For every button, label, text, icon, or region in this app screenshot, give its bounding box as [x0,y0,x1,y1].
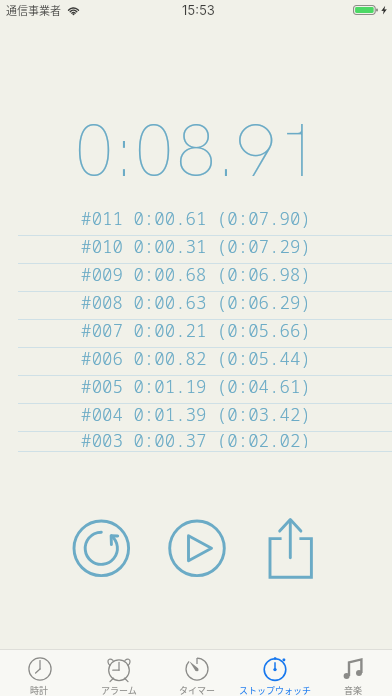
button[interactable]: #004 0:01.39 (0:03.42) [0,404,392,432]
button[interactable]: #006 0:00.82 (0:05.44) [0,348,392,376]
button[interactable]: Start [165,515,229,579]
button[interactable]: #008 0:00.63 (0:06.29) [0,292,392,320]
button[interactable]: #011 0:00.61 (0:07.90) [0,208,392,236]
staticText: #005 0:01.19 (0:04.61) [81,374,311,398]
button[interactable]: #009 0:00.68 (0:06.98) [0,264,392,292]
button[interactable]: ストップウォッチ [236,650,314,696]
staticText: #010 0:00.31 (0:07.29) [81,234,311,258]
staticText: #008 0:00.63 (0:06.29) [81,290,311,314]
staticText: タイマー [179,684,216,696]
staticText: 時計 [30,684,49,696]
button[interactable]: #010 0:00.31 (0:07.29) [0,236,392,264]
button[interactable]: 音楽 [314,650,392,696]
button[interactable]: #005 0:01.19 (0:04.61) [0,376,392,404]
staticText: 音楽 [344,684,363,696]
staticText: #004 0:01.39 (0:03.42) [81,402,311,426]
button[interactable]: Share [259,515,323,579]
staticText: #009 0:00.68 (0:06.98) [81,262,311,286]
button[interactable]: #003 0:00.37 (0:02.02) [0,432,392,452]
button[interactable]: 時計 [0,650,79,696]
staticText: ストップウォッチ [239,684,312,696]
button[interactable]: タイマー [158,650,236,696]
button[interactable]: Reset [69,515,133,579]
button[interactable]: #007 0:00.21 (0:05.66) [0,320,392,348]
staticText: アラーム [101,684,137,696]
staticText: 通信事業者 [6,2,61,18]
staticText: 15:53 [182,2,215,18]
staticText: #007 0:00.21 (0:05.66) [81,318,311,342]
staticText: 0:08.91 [73,101,319,199]
staticText: #006 0:00.82 (0:05.44) [81,346,311,370]
staticText: #003 0:00.37 (0:02.02) [81,428,311,448]
staticText: #011 0:00.61 (0:07.90) [81,208,311,230]
button[interactable]: アラーム [79,650,158,696]
